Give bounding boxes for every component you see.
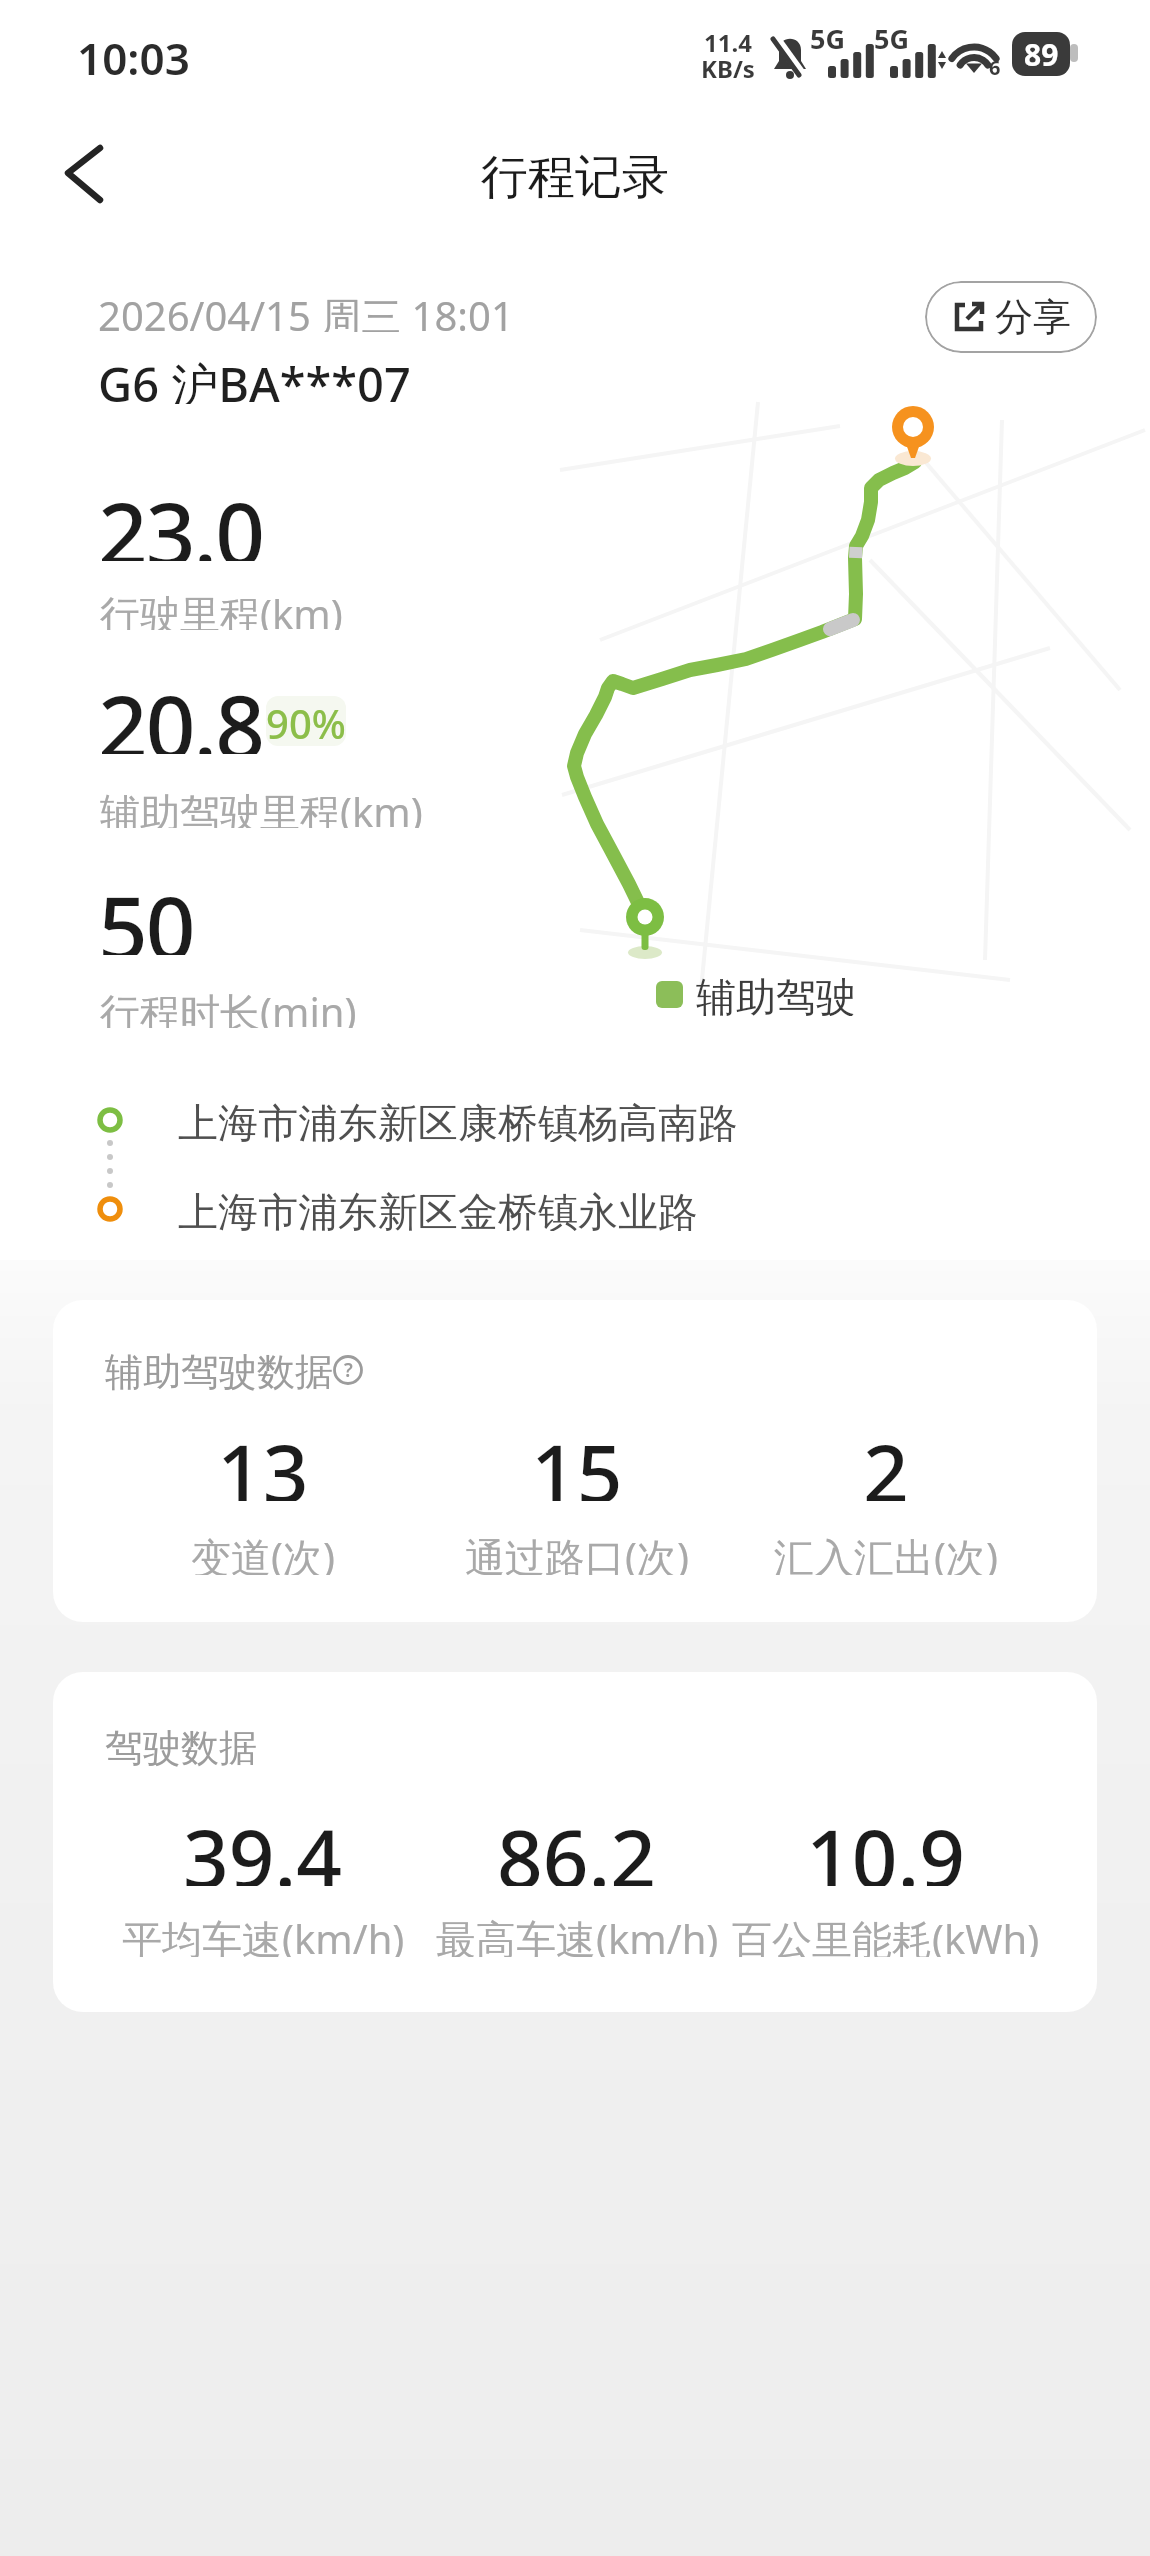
staticText: 89 xyxy=(1024,34,1059,75)
staticText: 辅助驾驶里程(km) xyxy=(100,784,423,828)
staticText: 行程记录 xyxy=(481,148,669,204)
staticText: 5G xyxy=(810,20,845,52)
staticText: 驾驶数据 xyxy=(105,1724,257,1768)
staticText: 上海市浦东新区康桥镇杨高南路 xyxy=(178,1098,738,1142)
staticText: 2026/04/15 周三 18:01 xyxy=(98,288,514,332)
staticText: 2 xyxy=(863,1417,909,1501)
staticText: 13 xyxy=(217,1417,309,1501)
button[interactable]: 分享 xyxy=(925,281,1097,353)
staticText: 辅助驾驶 xyxy=(696,972,856,1016)
button[interactable] xyxy=(40,130,130,220)
staticText: 23.0 xyxy=(98,473,263,561)
staticText: 行程时长(min) xyxy=(100,984,357,1028)
staticText: 39.4 xyxy=(183,1802,343,1886)
staticText: 6 xyxy=(989,54,1001,80)
staticText: 变道(次) xyxy=(191,1529,335,1575)
staticText: 最高车速(km/h) xyxy=(436,1911,719,1957)
staticText: 5G xyxy=(874,20,909,52)
staticText: 10:03 xyxy=(77,28,190,78)
staticText: 通过路口(次) xyxy=(465,1529,689,1575)
staticText: G6 沪BA***07 xyxy=(98,352,411,404)
staticText: ? xyxy=(344,1357,353,1383)
button[interactable]: ? xyxy=(332,1354,364,1386)
staticText: 分享 xyxy=(995,293,1071,341)
staticText: 行驶里程(km) xyxy=(100,586,343,630)
staticText: 11.4 xyxy=(704,26,752,54)
staticText: 10.9 xyxy=(806,1802,966,1886)
staticText: 50 xyxy=(98,867,194,955)
staticText: 20.8 xyxy=(98,666,263,754)
staticText: 15 xyxy=(531,1417,623,1501)
staticText: 平均车速(km/h) xyxy=(122,1911,405,1957)
staticText: 86.2 xyxy=(497,1802,657,1886)
staticText: 上海市浦东新区金桥镇永业路 xyxy=(178,1187,698,1231)
staticText: 百公里能耗(kWh) xyxy=(732,1911,1040,1957)
staticText: 90% xyxy=(266,696,346,746)
staticText: 辅助驾驶数据 xyxy=(105,1348,333,1392)
staticText: KB/s xyxy=(701,52,755,80)
staticText: 汇入汇出(次) xyxy=(774,1529,998,1575)
